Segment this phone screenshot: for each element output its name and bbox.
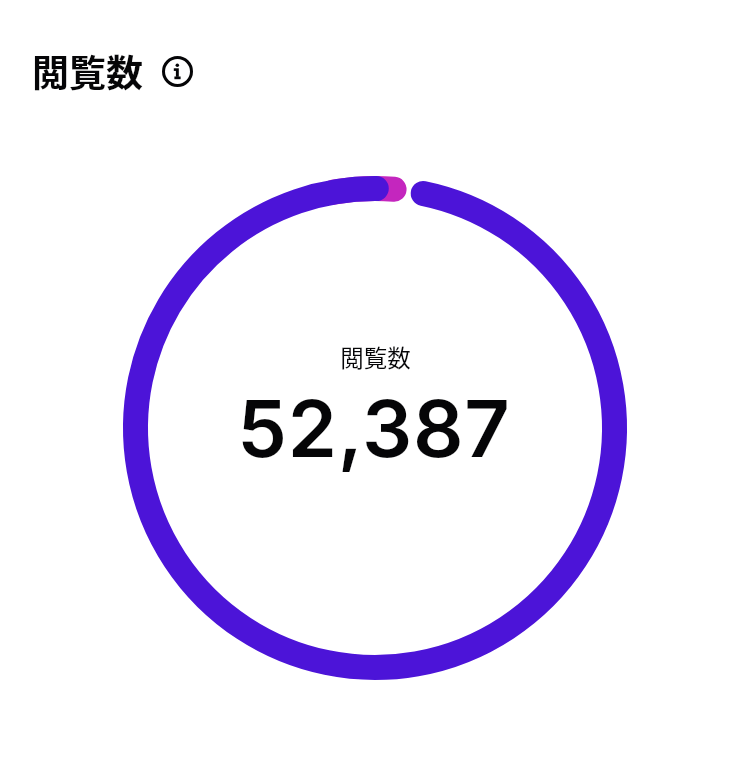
other: 閲覧数 52,387 [0, 0, 750, 769]
staticText: 閲覧数 [32, 44, 143, 98]
button[interactable]: 閲覧数 [32, 44, 194, 98]
button[interactable]: 閲覧数についての説明 [160, 54, 194, 88]
staticText: 52,387 [237, 380, 511, 476]
staticText: 閲覧数 [340, 340, 411, 374]
